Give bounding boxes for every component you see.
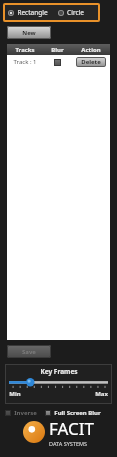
- staticText: Blur: [51, 46, 64, 54]
- button[interactable]: New: [7, 26, 51, 39]
- staticText: Inverse: [14, 409, 37, 417]
- button[interactable]: Inverse: [5, 409, 37, 417]
- staticText: Min: [9, 390, 21, 398]
- staticText: Action: [81, 46, 101, 54]
- staticText: Tracks: [15, 46, 35, 54]
- button[interactable]: Rectangle: [8, 8, 48, 17]
- button[interactable]: Track : 1: [7, 55, 110, 69]
- staticText: Circle: [67, 8, 84, 17]
- staticText: Track : 1: [13, 58, 37, 66]
- staticText: Full Screen Blur: [54, 409, 101, 417]
- button[interactable]: Save: [7, 345, 51, 358]
- staticText: New: [22, 29, 36, 37]
- staticText: Delete: [81, 58, 101, 66]
- staticText: DATA SYSTEMS: [49, 440, 87, 447]
- staticText: Save: [22, 348, 36, 356]
- button[interactable]: Circle: [58, 8, 84, 17]
- button[interactable]: Full Screen Blur: [45, 409, 101, 417]
- staticText: Key Frames: [40, 367, 78, 376]
- button[interactable]: Blur checkbox: [54, 59, 61, 66]
- button[interactable]: Key frames slider: [9, 379, 108, 390]
- staticText: Rectangle: [17, 8, 48, 17]
- button[interactable]: Delete: [76, 57, 106, 67]
- staticText: FACIT: [49, 417, 94, 440]
- staticText: Max: [95, 390, 108, 398]
